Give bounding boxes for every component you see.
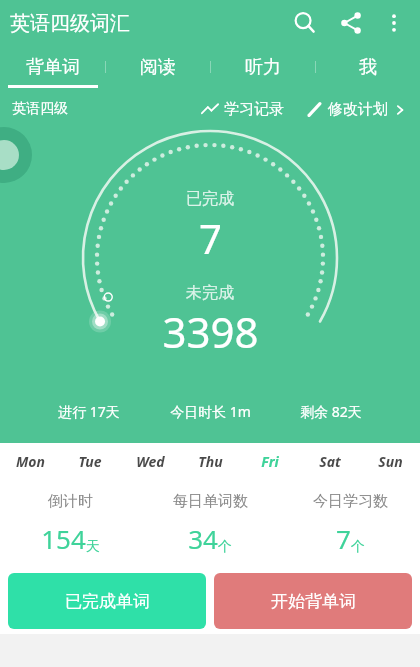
staticText: 剩余 82天 xyxy=(300,402,362,421)
staticText: Fri xyxy=(261,452,279,471)
staticText: 个 xyxy=(351,538,365,556)
button[interactable]: Mon xyxy=(0,443,60,480)
button[interactable]: 背单词 xyxy=(0,46,105,88)
staticText: Wed xyxy=(136,452,165,471)
staticText: 听力 xyxy=(245,56,281,79)
staticText: 背单词 xyxy=(26,56,80,79)
button[interactable]: More options xyxy=(374,3,414,43)
button[interactable]: Share xyxy=(328,0,374,46)
staticText: 已完成单词 xyxy=(65,591,150,612)
staticText: 天 xyxy=(86,538,100,556)
staticText: 个 xyxy=(218,538,232,556)
staticText: 今日学习数 xyxy=(313,492,388,511)
staticText: 已完成 xyxy=(186,189,234,209)
button[interactable]: Sun xyxy=(360,443,420,480)
button[interactable]: Sat xyxy=(300,443,360,480)
staticText: 7 xyxy=(199,211,222,265)
staticText: 今日时长 1m xyxy=(170,402,251,421)
staticText: Sun xyxy=(378,452,403,471)
button[interactable]: Wed xyxy=(120,443,180,480)
staticText: Tue xyxy=(78,452,102,471)
button[interactable]: 开始背单词 xyxy=(214,573,412,629)
staticText: Mon xyxy=(16,452,45,471)
button[interactable]: 修改计划 xyxy=(304,100,408,119)
button[interactable]: Search xyxy=(282,0,328,46)
button[interactable]: 已完成单词 xyxy=(8,573,206,629)
staticText: 每日单词数 xyxy=(173,492,248,511)
staticText: Thu xyxy=(198,452,223,471)
staticText: 未完成 xyxy=(186,283,234,303)
button[interactable]: 每日单词数 xyxy=(140,480,280,568)
staticText: 我 xyxy=(359,56,377,79)
button[interactable]: Fri xyxy=(240,443,300,480)
staticText: 学习记录 xyxy=(224,100,284,119)
staticText: 倒计时 xyxy=(48,492,93,511)
button[interactable]: 阅读 xyxy=(106,46,210,88)
staticText: Sat xyxy=(319,452,341,471)
button[interactable]: 学习记录 xyxy=(197,100,288,119)
staticText: 进行 17天 xyxy=(58,402,120,421)
staticText: 34 xyxy=(188,521,218,556)
staticText: 英语四级词汇 xyxy=(10,11,130,36)
staticText: 英语四级 xyxy=(12,100,68,118)
button[interactable]: Thu xyxy=(180,443,240,480)
button[interactable]: 听力 xyxy=(211,46,315,88)
button[interactable]: 今日学习数 xyxy=(280,480,420,568)
staticText: 阅读 xyxy=(140,56,176,79)
staticText: 3398 xyxy=(162,303,259,360)
staticText: 修改计划 xyxy=(328,100,388,119)
staticText: 开始背单词 xyxy=(271,591,356,612)
button[interactable]: Tue xyxy=(60,443,120,480)
button[interactable]: 倒计时 xyxy=(0,480,140,568)
button[interactable]: 我 xyxy=(316,46,420,88)
staticText: 154 xyxy=(41,521,86,556)
staticText: 7 xyxy=(336,521,351,556)
